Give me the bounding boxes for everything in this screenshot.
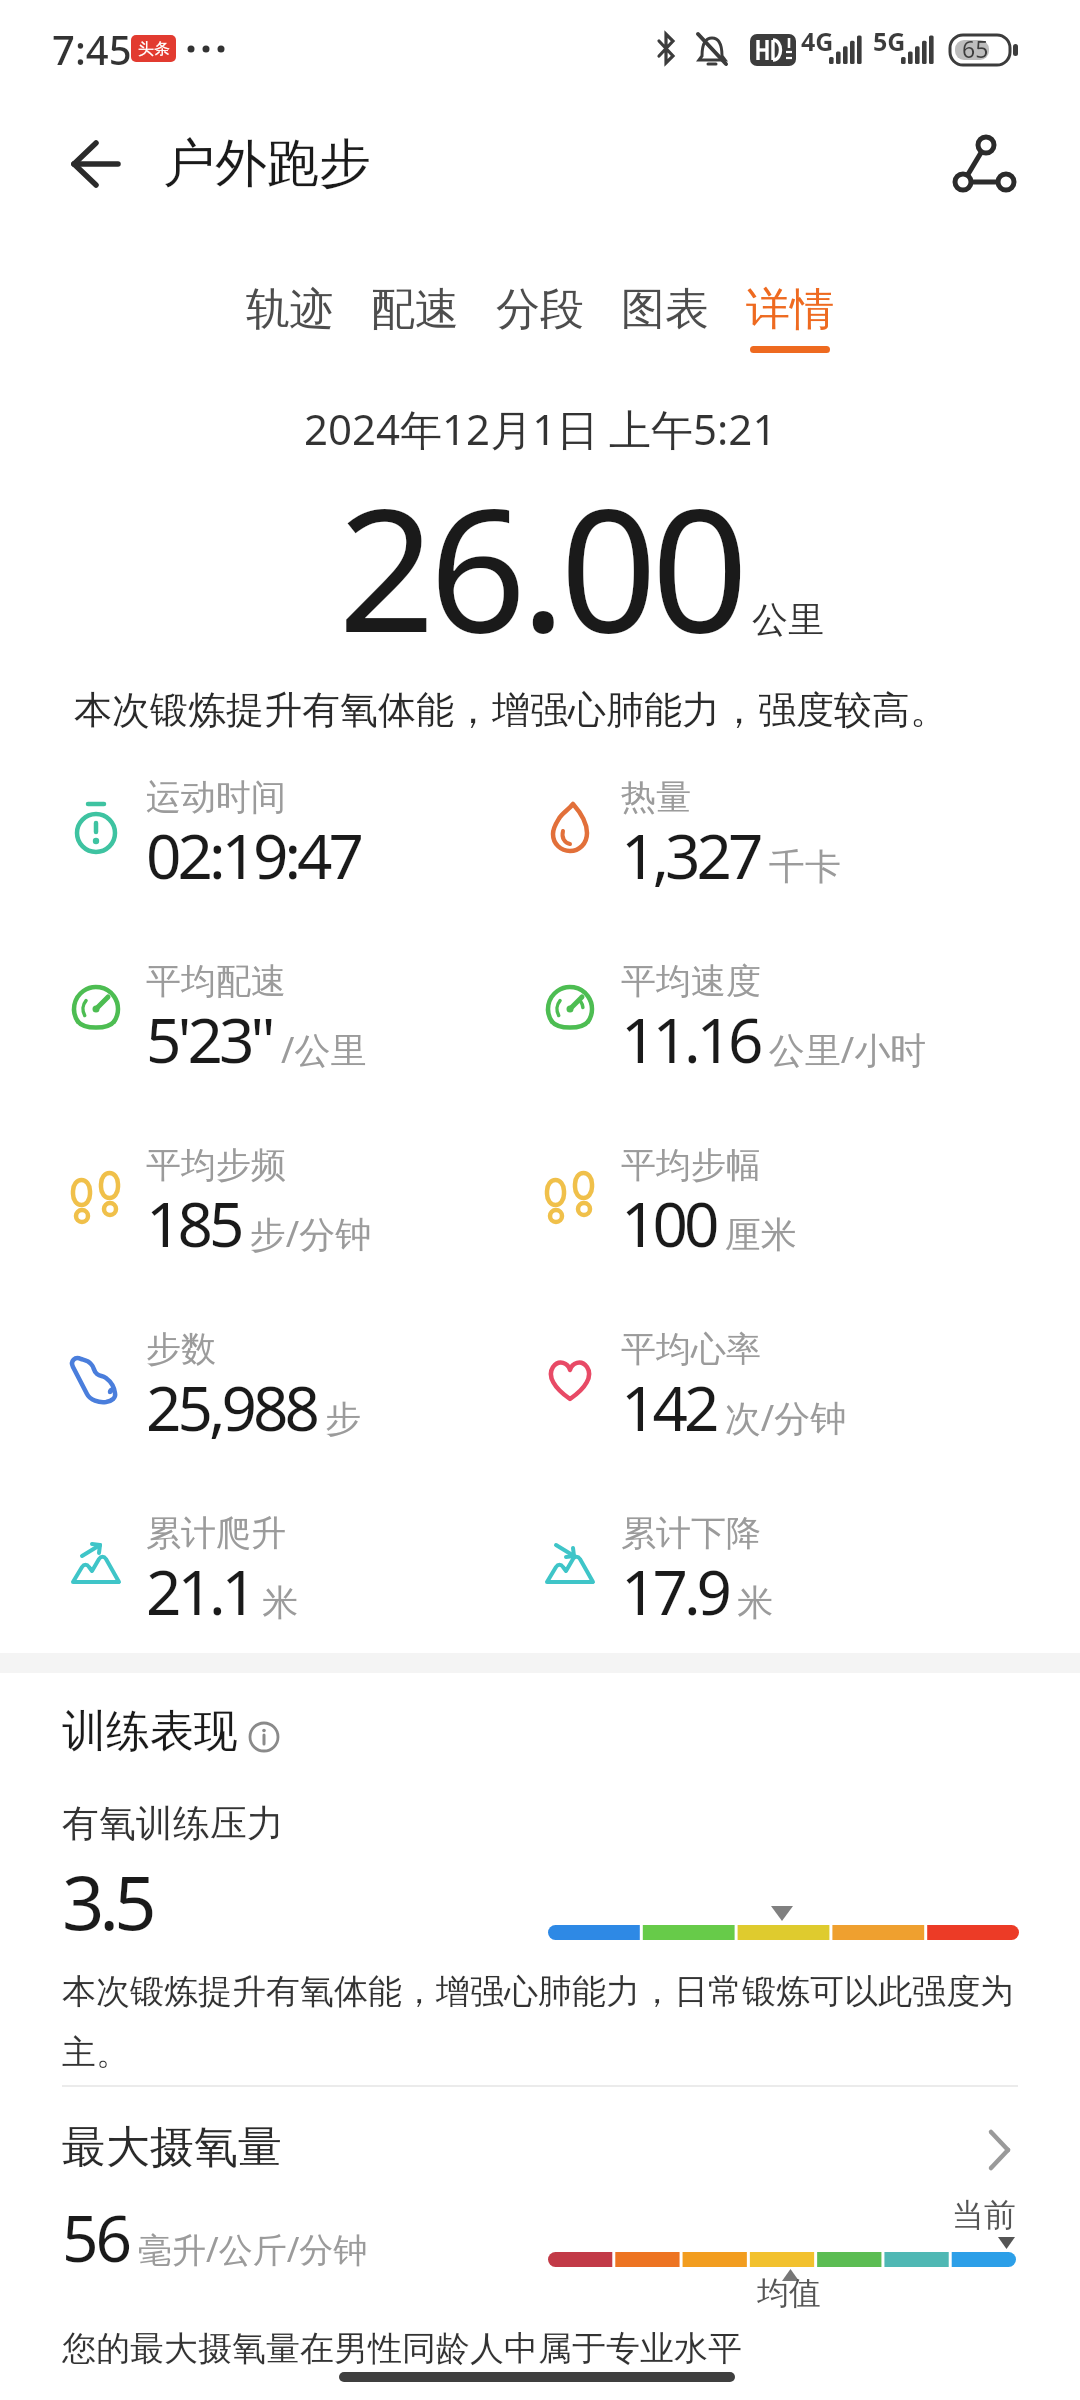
staticText: 26.00 公里: [338, 450, 824, 682]
staticText: 均值: [757, 2273, 821, 2313]
staticText: 56 毫升/公斤/分钟: [62, 2194, 368, 2281]
staticText: 185 步/分钟: [146, 1181, 372, 1265]
staticText: 本次锻炼提升有氧体能，增强心肺能力，日常锻炼可以此强度为 主。: [62, 1970, 1014, 2074]
staticText: 当前: [952, 2195, 1016, 2235]
staticText: 02:19:47: [146, 813, 361, 897]
staticText: 25,988 步: [146, 1365, 362, 1449]
staticText: 1,327 千卡: [621, 813, 841, 897]
staticText: 训练表现: [62, 1704, 238, 1759]
staticText: 头条: [138, 39, 170, 59]
staticText: 详情: [746, 282, 834, 337]
staticText: 累计下降: [621, 1511, 761, 1555]
button[interactable]: 轨迹: [245, 282, 335, 353]
staticText: 21.1 米: [146, 1549, 299, 1633]
button[interactable]: 分段: [495, 282, 585, 353]
staticText: 本次锻炼提升有氧体能，增强心肺能力，强度较高。: [74, 686, 948, 734]
staticText: 分段: [496, 282, 584, 337]
staticText: 平均步频: [146, 1143, 286, 1187]
staticText: 平均速度: [621, 959, 761, 1003]
button[interactable]: 配速: [370, 282, 460, 353]
button[interactable]: 训练表现: [62, 1704, 238, 1759]
staticText: 您的最大摄氧量在男性同龄人中属于专业水平: [62, 2327, 742, 2370]
button[interactable]: 图表: [620, 282, 710, 353]
staticText: 平均步幅: [621, 1143, 761, 1187]
staticText: 轨迹: [246, 282, 334, 337]
staticText: 4G: [801, 24, 834, 58]
staticText: 142 次/分钟: [621, 1365, 847, 1449]
staticText: 17.9 米: [621, 1549, 774, 1633]
staticText: 平均心率: [621, 1327, 761, 1371]
staticText: 户外跑步: [163, 131, 371, 197]
staticText: 2024年12月1日 上午5:21: [304, 400, 777, 457]
staticText: 100 厘米: [621, 1181, 797, 1265]
staticText: 最大摄氧量: [62, 2120, 282, 2175]
button[interactable]: [941, 124, 1027, 204]
staticText: 累计爬升: [146, 1511, 286, 1555]
staticText: 有氧训练压力: [62, 1800, 284, 1847]
button[interactable]: [58, 136, 130, 196]
staticText: 步数: [146, 1327, 216, 1371]
staticText: 5G: [873, 24, 906, 58]
staticText: 5'23" /公里: [146, 997, 367, 1081]
staticText: 7:45: [52, 22, 132, 76]
staticText: 3.5: [62, 1851, 152, 1952]
staticText: 平均配速: [146, 959, 286, 1003]
staticText: 运动时间: [146, 775, 286, 819]
staticText: 图表: [621, 282, 709, 337]
staticText: 11.16 公里/小时: [621, 997, 927, 1081]
button[interactable]: 详情: [745, 282, 835, 353]
staticText: 配速: [371, 282, 459, 337]
staticText: 热量: [621, 775, 691, 819]
staticText: 65: [962, 33, 989, 64]
button[interactable]: [0, 2100, 1080, 2190]
